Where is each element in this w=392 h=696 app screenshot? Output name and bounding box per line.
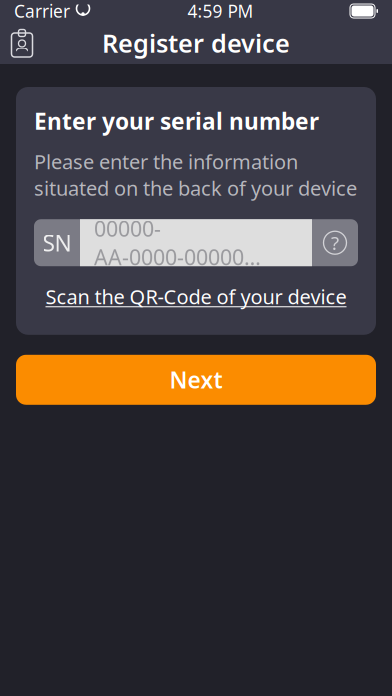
button[interactable]: Account	[0, 22, 44, 64]
staticText: Register device	[102, 26, 290, 60]
staticText: 00000-AA-0000-00000…	[94, 214, 261, 271]
staticText: Scan the QR-Code of your device	[45, 283, 346, 310]
staticText: Carrier	[14, 0, 70, 22]
button[interactable]: Scan the QR-Code of your device	[34, 277, 358, 316]
staticText: ?	[331, 230, 339, 255]
staticText: SN	[42, 228, 71, 258]
staticText	[70, 0, 75, 22]
staticText: Next	[169, 365, 222, 395]
staticText: 4:59 PM	[187, 0, 253, 22]
staticText: Enter your serial number	[34, 106, 319, 136]
button[interactable]: Next	[16, 355, 376, 405]
staticText: Please enter the information situated on…	[34, 148, 357, 201]
button[interactable]: Help about serial number	[312, 219, 358, 266]
